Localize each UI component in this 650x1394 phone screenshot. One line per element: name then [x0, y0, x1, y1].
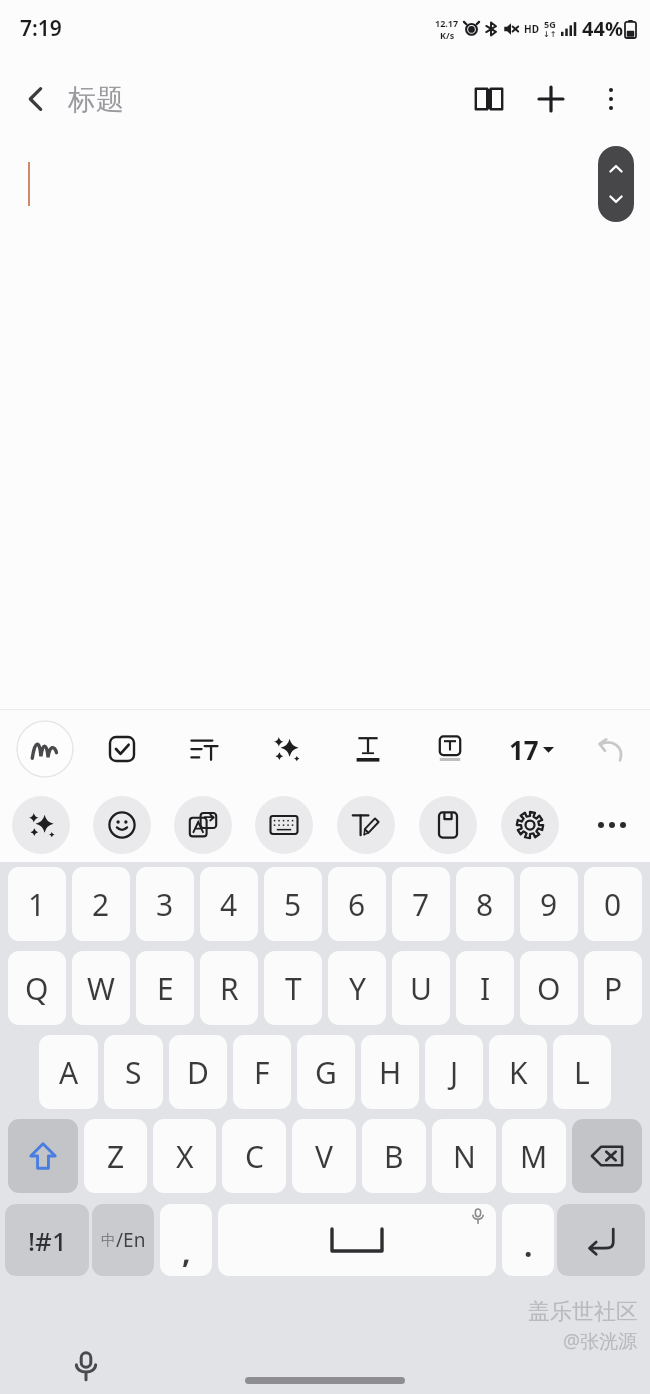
button[interactable]: Scroll [598, 146, 634, 222]
button[interactable]: A [39, 1035, 98, 1109]
button[interactable]: D [169, 1035, 227, 1109]
button[interactable]: Z [84, 1119, 147, 1193]
button[interactable]: M [502, 1119, 566, 1193]
button[interactable]: Translate [174, 796, 232, 854]
button[interactable]: J [425, 1035, 483, 1109]
button[interactable]: Space [218, 1204, 496, 1276]
button[interactable]: Keyboard [255, 796, 313, 854]
button[interactable]: Paragraph style [177, 722, 231, 776]
button[interactable]: Voice input [62, 1342, 110, 1390]
button[interactable]: 17 [505, 732, 558, 767]
staticText: , [182, 1231, 191, 1272]
button[interactable]: 4 [200, 867, 258, 941]
button[interactable]: T [264, 951, 322, 1025]
button[interactable]: Shift [8, 1119, 78, 1193]
staticText: K [509, 1052, 528, 1093]
button[interactable]: 6 [328, 867, 386, 941]
staticText: P [604, 968, 623, 1009]
staticText: F [254, 1052, 270, 1093]
staticText: J [450, 1052, 459, 1093]
staticText: 7 [412, 884, 430, 925]
staticText: 0 [604, 884, 622, 925]
button[interactable]: Y [328, 951, 386, 1025]
button[interactable]: Text style [341, 722, 395, 776]
button[interactable]: H [361, 1035, 419, 1109]
staticText: 6 [348, 884, 366, 925]
staticText: B [384, 1136, 404, 1177]
button[interactable]: Handwriting input [337, 796, 395, 854]
button[interactable]: X [153, 1119, 216, 1193]
button[interactable]: 中 [92, 1204, 154, 1276]
button[interactable]: Add [520, 68, 582, 130]
button[interactable]: More options [582, 70, 640, 128]
staticText: 7:19 [20, 14, 62, 43]
staticText: V [315, 1136, 333, 1177]
button[interactable]: O [520, 951, 578, 1025]
staticText: 5 [284, 884, 302, 925]
button[interactable]: Backspace [572, 1119, 642, 1193]
staticText: Z [107, 1136, 125, 1177]
button[interactable]: 标题 [68, 56, 458, 142]
staticText: C [245, 1136, 264, 1177]
button[interactable]: AI [12, 796, 70, 854]
button[interactable]: 3 [136, 867, 194, 941]
button[interactable]: L [553, 1035, 611, 1109]
button[interactable]: G [297, 1035, 355, 1109]
staticText: R [220, 968, 239, 1009]
staticText: ↓↑ [543, 30, 557, 39]
button[interactable]: Checklist [95, 722, 149, 776]
staticText: H [379, 1052, 402, 1093]
button[interactable]: Q [8, 951, 66, 1025]
button[interactable]: Undo [584, 722, 638, 776]
button[interactable]: Clipboard [419, 796, 477, 854]
staticText: G [315, 1052, 337, 1093]
button[interactable]: 5 [264, 867, 322, 941]
button[interactable]: Handwriting [16, 720, 74, 778]
button[interactable]: R [200, 951, 258, 1025]
button[interactable]: W [72, 951, 130, 1025]
staticText: D [187, 1052, 209, 1093]
button[interactable]: N [432, 1119, 496, 1193]
staticText: A [59, 1052, 79, 1093]
button[interactable]: . [502, 1204, 554, 1276]
button[interactable]: I [456, 951, 514, 1025]
button[interactable]: !#1 [5, 1204, 89, 1276]
button[interactable]: Emoji [93, 796, 151, 854]
staticText: Y [349, 968, 366, 1009]
button[interactable]: Settings [501, 796, 559, 854]
staticText: 5G [544, 18, 556, 30]
staticText: 9 [540, 884, 558, 925]
button[interactable]: 2 [72, 867, 130, 941]
staticText: /En [116, 1227, 146, 1253]
button[interactable]: 8 [456, 867, 514, 941]
staticText: Q [25, 968, 49, 1009]
button[interactable]: V [292, 1119, 356, 1193]
button[interactable]: 0 [584, 867, 642, 941]
button[interactable]: F [233, 1035, 291, 1109]
button[interactable]: 1 [8, 867, 66, 941]
button[interactable]: U [392, 951, 450, 1025]
button[interactable]: Text box [423, 722, 477, 776]
staticText: I [480, 968, 491, 1009]
button[interactable]: Reading view [458, 68, 520, 130]
staticText: @张洸源 [563, 1328, 638, 1354]
staticText: T [285, 968, 302, 1009]
button[interactable]: K [489, 1035, 547, 1109]
button[interactable]: Back [14, 70, 58, 128]
button[interactable]: AI assist [259, 722, 313, 776]
staticText: M [520, 1136, 548, 1177]
button[interactable]: 7 [392, 867, 450, 941]
staticText: 标题 [68, 82, 124, 117]
button[interactable]: 9 [520, 867, 578, 941]
button[interactable]: , [160, 1204, 212, 1276]
button[interactable]: S [104, 1035, 163, 1109]
button[interactable]: C [222, 1119, 286, 1193]
button[interactable]: E [136, 951, 194, 1025]
staticText: 盖乐世社区 [528, 1298, 638, 1326]
button[interactable]: More [584, 797, 640, 853]
staticText: 中 [101, 1231, 116, 1250]
button[interactable]: Enter [557, 1204, 645, 1276]
button[interactable]: P [584, 951, 642, 1025]
button[interactable]: B [362, 1119, 426, 1193]
staticText: 12.17 [435, 17, 459, 29]
